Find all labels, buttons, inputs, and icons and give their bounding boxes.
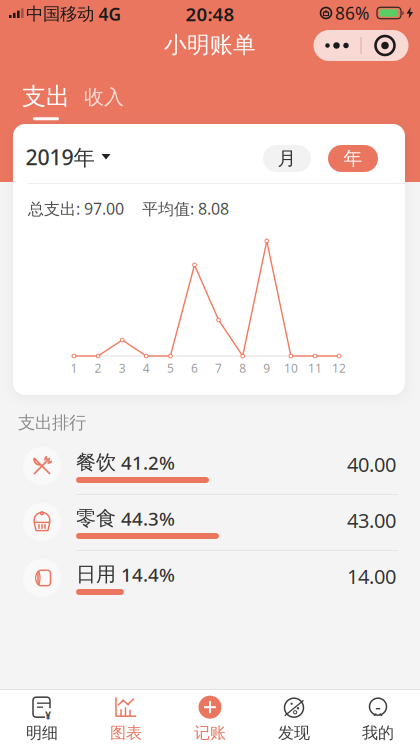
button[interactable]: 2019年: [25, 143, 110, 171]
button[interactable]: 日用: [0, 550, 420, 606]
staticText: 零食: [76, 506, 116, 531]
staticText: 小明账单: [164, 31, 256, 59]
button[interactable]: 收入: [84, 85, 124, 109]
staticText: 总支出:: [28, 198, 84, 219]
staticText: 4: [143, 360, 150, 376]
button[interactable]: 零食: [0, 494, 420, 550]
staticText: 3: [119, 360, 126, 376]
staticText: 14.4%: [121, 562, 175, 587]
staticText: 我的: [362, 723, 394, 743]
staticText: 明细: [26, 723, 58, 743]
staticText: 8.08: [198, 198, 229, 219]
staticText: 支出: [22, 82, 70, 111]
staticText: 2: [95, 360, 102, 376]
staticText: 7: [215, 360, 222, 376]
staticText: 44.3%: [121, 506, 175, 531]
button[interactable]: 年: [328, 145, 378, 172]
button[interactable]: 餐饮: [0, 438, 420, 494]
staticText: 日用: [76, 562, 116, 587]
staticText: 月: [277, 147, 296, 170]
staticText: 年: [343, 147, 362, 170]
staticText: 2019年: [25, 143, 94, 171]
staticText: 12: [332, 360, 346, 376]
staticText: 图表: [110, 723, 142, 743]
staticText: 41.2%: [121, 450, 175, 475]
button[interactable]: 更多与关闭: [313, 30, 408, 61]
staticText: 43.00: [347, 507, 396, 534]
staticText: 记账: [194, 723, 226, 743]
staticText: 40.00: [347, 451, 396, 478]
staticText: 5: [167, 360, 174, 376]
staticText: 6: [191, 360, 198, 376]
button[interactable]: 月: [263, 145, 311, 172]
staticText: 8: [239, 360, 246, 376]
button[interactable]: 记账: [170, 691, 250, 747]
staticText: 9: [263, 360, 270, 376]
staticText: 餐饮: [76, 450, 116, 475]
staticText: 收入: [84, 85, 124, 109]
staticText: ¥: [45, 708, 51, 722]
staticText: 发现: [278, 723, 310, 743]
staticText: 支出排行: [18, 412, 86, 433]
button[interactable]: 发现: [254, 691, 334, 747]
staticText: 中国移动: [26, 3, 94, 25]
staticText: 平均值:: [142, 198, 198, 219]
button[interactable]: 我的: [338, 691, 418, 747]
staticText: 1: [70, 360, 77, 376]
staticText: 86%: [335, 1, 369, 24]
staticText: 20:48: [185, 2, 234, 26]
button[interactable]: ¥: [2, 691, 82, 747]
button[interactable]: 支出: [22, 82, 70, 120]
button[interactable]: 图表: [86, 691, 166, 747]
staticText: 11: [308, 360, 322, 376]
staticText: 4G: [98, 2, 121, 25]
staticText: 10: [284, 360, 298, 376]
staticText: 97.00: [84, 198, 124, 219]
staticText: 14.00: [347, 563, 396, 590]
